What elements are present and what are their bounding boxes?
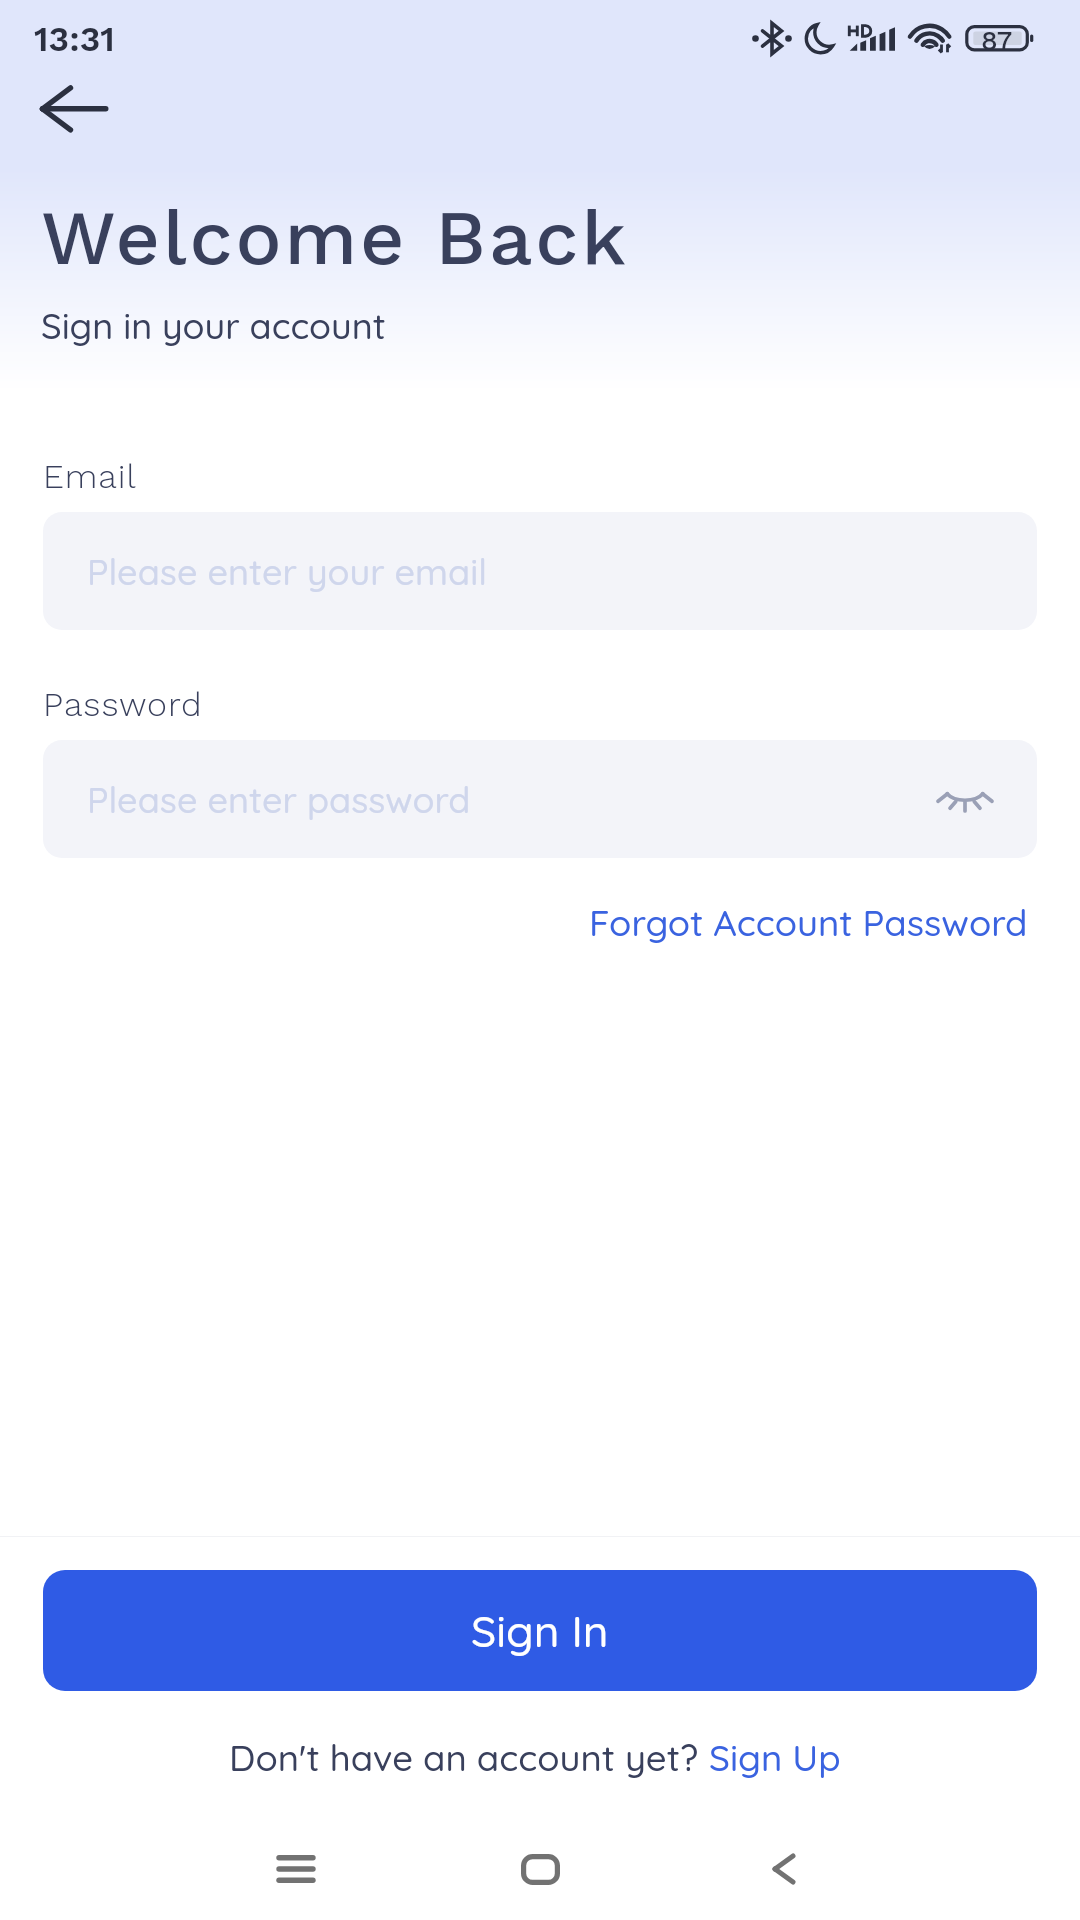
button[interactable]: Forgot Account Password	[589, 899, 1028, 945]
button[interactable]: Back	[8, 70, 88, 150]
staticText: 87	[981, 25, 1013, 57]
button[interactable]: Sign In	[43, 1570, 1037, 1691]
button[interactable]: Recents	[250, 1823, 342, 1915]
staticText: Email	[43, 456, 137, 496]
staticText: Sign in your account	[41, 303, 386, 348]
staticText: Welcome Back	[41, 192, 629, 282]
button[interactable]: Please enter your email	[43, 512, 1037, 630]
button[interactable]: Home	[494, 1823, 586, 1915]
staticText: Forgot Account Password	[589, 899, 1028, 945]
staticText: Don't have an account yet?	[229, 1734, 709, 1780]
button[interactable]: Back	[738, 1823, 830, 1915]
button[interactable]: Show password	[924, 758, 1006, 840]
staticText: Password	[43, 684, 203, 724]
button[interactable]: Please enter password	[43, 740, 1037, 858]
staticText: Please enter your email	[87, 549, 487, 594]
staticText: 13:31	[34, 18, 115, 59]
staticText: Please enter password	[87, 777, 471, 822]
staticText: Sign Up	[709, 1734, 841, 1780]
staticText: Sign In	[471, 1603, 609, 1658]
button[interactable]: Sign Up	[709, 1734, 841, 1780]
